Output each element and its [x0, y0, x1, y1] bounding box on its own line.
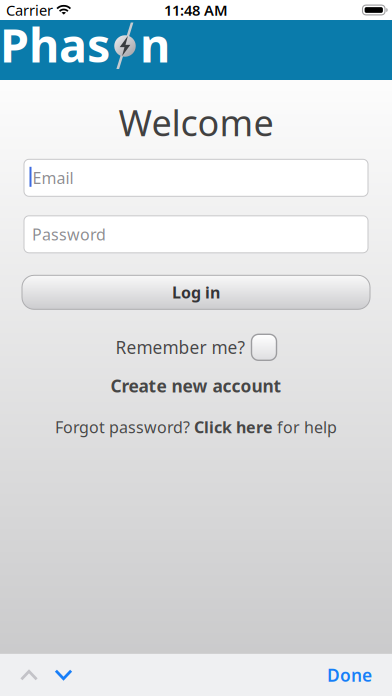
button[interactable]: Create new account	[110, 374, 281, 397]
button[interactable]: Email	[24, 159, 368, 196]
staticText: Email	[32, 167, 73, 188]
button[interactable]: Password	[24, 216, 368, 253]
staticText: for help	[273, 416, 337, 437]
button[interactable]: Done	[327, 663, 372, 686]
staticText: Welcome	[118, 98, 273, 146]
staticText: Create new account	[110, 374, 281, 397]
staticText: Log in	[172, 282, 220, 303]
staticText: Remember me?	[115, 336, 245, 359]
button[interactable]: Previous field	[20, 669, 38, 681]
button[interactable]: Log in	[22, 275, 370, 309]
staticText: Click here	[194, 416, 273, 437]
staticText: Phas	[0, 13, 110, 75]
staticText: Password	[32, 224, 106, 245]
staticText: Forgot password?	[55, 416, 194, 437]
button[interactable]: Remember me	[251, 334, 276, 360]
staticText: Carrier	[6, 0, 53, 20]
staticText: n	[140, 13, 170, 75]
staticText: 11:48 AM	[164, 0, 228, 20]
staticText: Done	[327, 663, 372, 686]
button[interactable]: Click here	[194, 416, 273, 437]
button[interactable]: Next field	[54, 669, 72, 681]
